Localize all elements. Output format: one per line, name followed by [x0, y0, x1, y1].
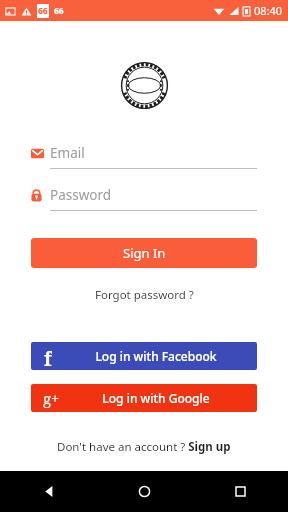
staticText: Email [50, 144, 85, 162]
staticText: Don't have an account ? Sign up [57, 439, 231, 455]
button[interactable]: g+ [31, 384, 257, 412]
staticText: Log in with Google [102, 390, 210, 406]
button[interactable]: f [31, 342, 257, 370]
staticText: 66 [54, 5, 64, 17]
staticText: 08:40 [254, 3, 283, 18]
staticText: 66 [38, 5, 48, 17]
staticText: Log in with Facebook [95, 348, 217, 364]
button[interactable]: Sign In [31, 238, 257, 268]
button[interactable]: Recent apps [192, 471, 288, 512]
button[interactable]: Forgot password ? [89, 284, 200, 306]
button[interactable]: Home [96, 471, 192, 512]
button[interactable]: Back [0, 471, 96, 512]
staticText: Password [50, 186, 112, 204]
button[interactable]: Don't have an account ? Sign up [49, 435, 239, 459]
staticText: f [44, 346, 52, 366]
staticText: g+ [43, 388, 60, 408]
staticText: Sign In [123, 244, 166, 262]
